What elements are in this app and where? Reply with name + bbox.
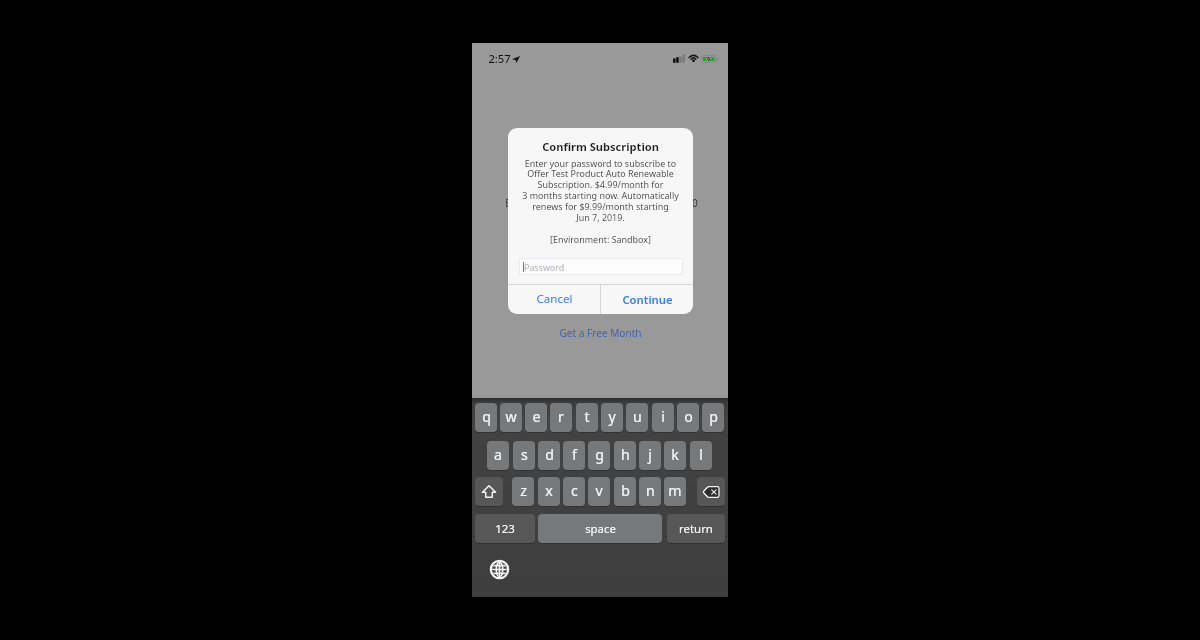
button[interactable]: Switch keyboard language <box>490 560 509 579</box>
button[interactable]: Password <box>519 258 683 275</box>
staticText: z <box>520 481 527 500</box>
staticText: o <box>684 407 693 426</box>
button[interactable]: x <box>538 477 560 506</box>
staticText: space <box>585 521 616 537</box>
button[interactable]: return <box>667 514 725 543</box>
staticText: e <box>532 407 541 426</box>
staticText: 123 <box>495 521 515 537</box>
button[interactable]: Backspace <box>697 477 725 506</box>
staticText: return <box>679 521 713 537</box>
staticText: m <box>668 481 682 500</box>
staticText: r <box>558 407 564 426</box>
button[interactable]: b <box>614 477 636 506</box>
button[interactable]: Get a Free Month <box>555 324 646 342</box>
button[interactable]: Cancel <box>508 284 600 314</box>
staticText: k <box>671 445 679 464</box>
button[interactable]: a <box>487 441 509 470</box>
button[interactable]: u <box>626 403 648 432</box>
button[interactable]: Shift <box>475 477 503 506</box>
staticText: v <box>595 481 603 500</box>
staticText: a <box>494 445 502 464</box>
button[interactable]: s <box>513 441 535 470</box>
button[interactable]: y <box>601 403 623 432</box>
staticText: Password <box>524 261 565 273</box>
staticText: f <box>572 445 577 464</box>
staticText: c <box>571 481 578 500</box>
staticText: y <box>608 407 616 426</box>
button[interactable]: Continue <box>601 284 693 314</box>
staticText: w <box>505 407 517 426</box>
staticText: g <box>595 445 604 464</box>
staticText: Get a Free Month <box>559 326 642 340</box>
staticText: j <box>648 445 652 464</box>
button[interactable]: h <box>614 441 636 470</box>
staticText: q <box>482 407 491 426</box>
staticText: b <box>621 481 630 500</box>
button[interactable]: r <box>550 403 572 432</box>
staticText: Enter your password to subscribe to Offe… <box>508 157 693 224</box>
staticText: d <box>545 445 554 464</box>
button[interactable]: t <box>576 403 598 432</box>
staticText: Continue <box>622 292 673 307</box>
staticText: Confirm Subscription <box>508 139 693 154</box>
button[interactable]: p <box>702 403 724 432</box>
button[interactable]: g <box>588 441 610 470</box>
button[interactable]: j <box>639 441 661 470</box>
staticText: 2:57 <box>488 51 511 66</box>
button[interactable]: z <box>512 477 534 506</box>
staticText: i <box>661 407 665 426</box>
button[interactable]: q <box>475 403 497 432</box>
staticText: Cancel <box>536 291 573 307</box>
staticText: x <box>545 481 553 500</box>
staticText: p <box>709 407 718 426</box>
button[interactable]: e <box>525 403 547 432</box>
staticText: t <box>584 407 590 426</box>
staticText: B <box>505 196 512 210</box>
button[interactable]: space <box>538 514 662 543</box>
button[interactable]: o <box>677 403 699 432</box>
staticText: 0 <box>692 196 698 210</box>
button[interactable]: i <box>652 403 674 432</box>
button[interactable]: v <box>588 477 610 506</box>
staticText: h <box>621 445 630 464</box>
button[interactable]: m <box>664 477 686 506</box>
button[interactable]: d <box>538 441 560 470</box>
button[interactable]: k <box>664 441 686 470</box>
button[interactable]: n <box>639 477 661 506</box>
staticText: n <box>646 481 655 500</box>
staticText: [Environment: Sandbox] <box>508 233 693 245</box>
staticText: u <box>633 407 642 426</box>
staticText: s <box>521 445 528 464</box>
button[interactable]: w <box>500 403 522 432</box>
button[interactable]: l <box>690 441 712 470</box>
button[interactable]: f <box>563 441 585 470</box>
button[interactable]: 123 <box>475 514 535 543</box>
staticText: l <box>699 445 703 464</box>
button[interactable]: c <box>563 477 585 506</box>
